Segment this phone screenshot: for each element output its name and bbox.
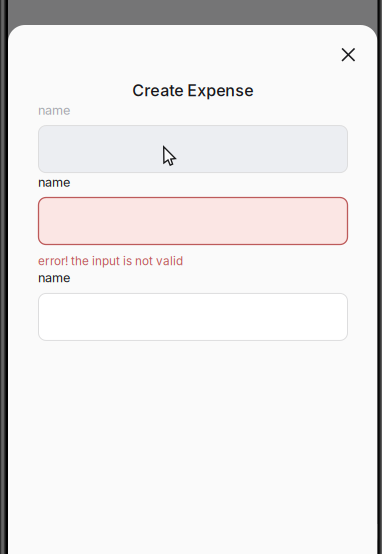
staticText: name bbox=[38, 174, 70, 190]
staticText: name bbox=[38, 103, 70, 118]
staticText: name bbox=[38, 270, 70, 285]
staticText: error! the input is not valid bbox=[38, 254, 183, 268]
staticText: Create Expense bbox=[132, 81, 253, 100]
button[interactable]: Close bbox=[332, 39, 364, 71]
